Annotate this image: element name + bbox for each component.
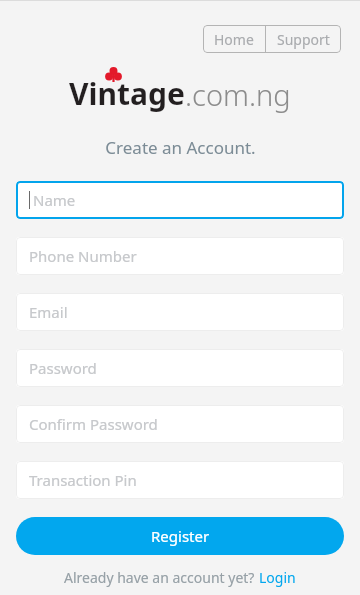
button[interactable]: Email [16,293,344,331]
staticText: Already have an account yet? [64,568,259,587]
staticText: Vintage [69,73,185,114]
staticText: Email [29,302,68,322]
button[interactable]: Login [259,568,296,587]
button[interactable]: Phone Number [16,237,344,275]
staticText: Phone Number [29,246,137,266]
staticText: Support [277,30,330,49]
button[interactable]: Transaction Pin [16,461,344,499]
button[interactable]: Confirm Password [16,405,344,443]
button[interactable]: Password [16,349,344,387]
staticText: Create an Account. [105,136,256,159]
button[interactable]: Register [16,517,344,555]
staticText: Register [151,526,210,546]
staticText: Password [29,358,97,378]
staticText: Confirm Password [29,414,158,434]
staticText: Name [33,190,76,210]
button[interactable]: Home [203,25,265,53]
staticText: Transaction Pin [29,470,137,490]
button[interactable]: Name [16,181,344,219]
staticText: .com.ng [185,75,291,114]
staticText: Login [259,568,296,587]
button[interactable]: Support [266,25,341,53]
staticText: Home [214,30,254,49]
